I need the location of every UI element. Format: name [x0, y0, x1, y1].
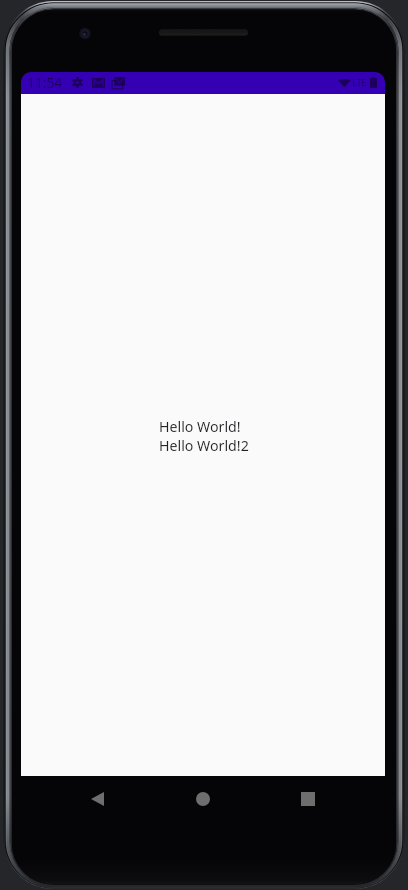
staticText: LTE — [352, 76, 367, 89]
staticText: 11:54 — [27, 73, 63, 92]
button[interactable]: Recents — [288, 779, 328, 819]
button[interactable]: Home — [183, 779, 223, 819]
button[interactable]: Back — [77, 779, 117, 819]
staticText: Hello World! Hello World!2 — [159, 417, 249, 455]
